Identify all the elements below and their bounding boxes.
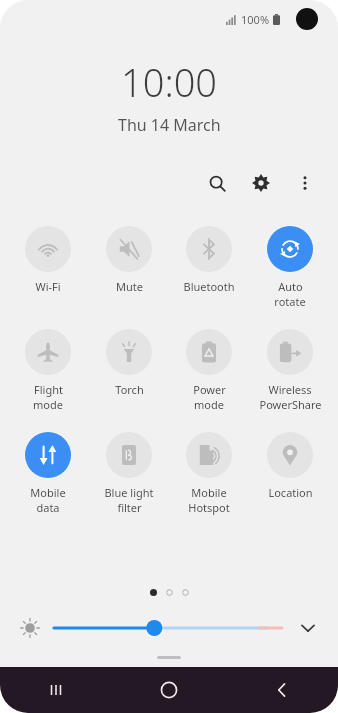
staticText: data [36, 500, 60, 515]
button[interactable]: Auto [251, 224, 329, 311]
button[interactable]: More options [286, 164, 324, 202]
staticText: Mobile [191, 485, 227, 500]
staticText: Auto [278, 279, 303, 294]
staticText: rotate [274, 294, 306, 309]
staticText: Wi-Fi [35, 279, 61, 294]
staticText: Mute [116, 279, 143, 294]
button[interactable]: Mobile [9, 430, 87, 517]
button[interactable]: Flight [9, 327, 87, 414]
staticText: Mobile [30, 485, 66, 500]
button[interactable]: Power [170, 327, 248, 414]
staticText: PowerShare [259, 397, 322, 412]
staticText: Bluetooth [183, 279, 235, 294]
button[interactable]: Wireless [251, 327, 329, 414]
button[interactable]: Brightness [14, 612, 46, 644]
staticText: Thu 14 March [118, 114, 221, 136]
staticText: mode [33, 397, 63, 412]
button[interactable]: Search [198, 164, 236, 202]
staticText: 10:00 [121, 56, 218, 108]
staticText: Power [193, 382, 226, 397]
button[interactable]: Wi-Fi [9, 224, 87, 296]
staticText: Hotspot [188, 500, 230, 515]
button[interactable]: Back [225, 667, 338, 713]
button[interactable]: Location [251, 430, 329, 502]
button[interactable]: Bluetooth [170, 224, 248, 296]
staticText: mode [194, 397, 224, 412]
button[interactable]: Home [112, 667, 225, 713]
staticText: filter [117, 500, 142, 515]
staticText: Blue light [104, 485, 154, 500]
button[interactable]: Recent apps [0, 667, 112, 713]
staticText: Wireless [268, 382, 312, 397]
staticText: Flight [34, 382, 63, 397]
button[interactable]: Blue light [90, 430, 168, 517]
staticText: Location [268, 485, 313, 500]
button[interactable]: Torch [90, 327, 168, 399]
button[interactable] [157, 656, 181, 659]
button[interactable]: Expand [292, 612, 324, 644]
button[interactable]: Settings [242, 164, 280, 202]
button[interactable] [54, 613, 282, 643]
staticText: 100% [241, 12, 270, 27]
button[interactable]: Mobile [170, 430, 248, 517]
staticText: Torch [115, 382, 144, 397]
button[interactable]: Mute [90, 224, 168, 296]
